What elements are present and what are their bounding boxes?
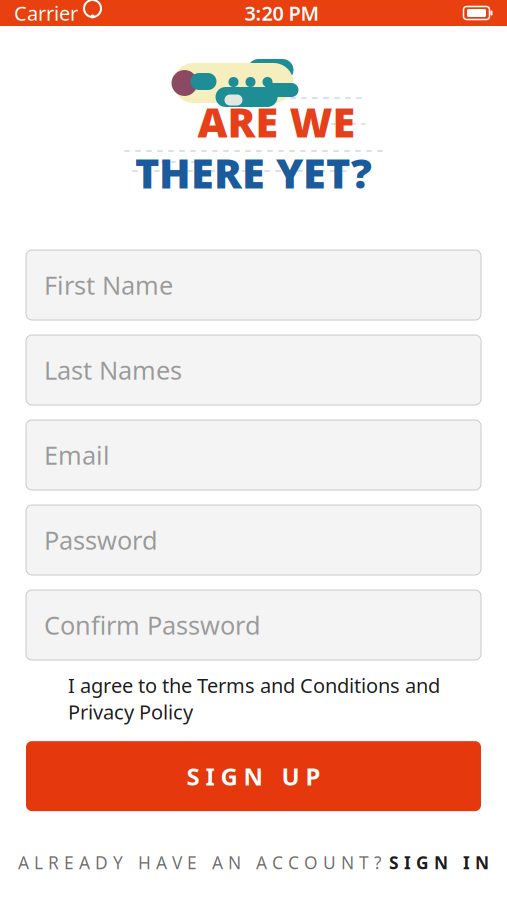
button[interactable]: Email xyxy=(26,420,481,490)
staticText: I agree to the Terms and Conditions and … xyxy=(68,672,440,725)
staticText: Email xyxy=(44,438,110,472)
staticText: A L R E A D Y H A V E A N A C C O U N T … xyxy=(18,851,382,874)
button[interactable]: First Name xyxy=(26,250,481,320)
button[interactable]: A L R E A D Y H A V E A N A C C O U N T … xyxy=(18,851,489,874)
staticText: Password xyxy=(44,523,158,557)
staticText: S I G N I N xyxy=(389,851,489,874)
button[interactable]: Password xyxy=(26,505,481,575)
staticText: 3:20 PM xyxy=(244,0,319,26)
staticText: Last Names xyxy=(44,353,182,387)
staticText: S I G N U P xyxy=(186,760,320,792)
staticText: ARE WE xyxy=(197,94,355,149)
button[interactable]: Last Names xyxy=(26,335,481,405)
staticText: Confirm Password xyxy=(44,608,261,642)
button[interactable]: Confirm Password xyxy=(26,590,481,660)
staticText: Carrier xyxy=(14,0,78,26)
staticText: THERE YET? xyxy=(135,145,372,200)
button[interactable]: S I G N U P xyxy=(26,741,481,811)
staticText: First Name xyxy=(44,268,173,302)
